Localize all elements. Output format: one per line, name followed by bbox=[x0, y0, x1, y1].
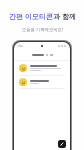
button[interactable] bbox=[14, 61, 70, 75]
staticText: 오늘을 기록해보세요! bbox=[22, 26, 63, 32]
staticText: 간편 이모티콘 bbox=[9, 12, 53, 22]
button[interactable]: 새 글 쓰기 bbox=[58, 140, 66, 148]
staticText: 과 함께 bbox=[53, 12, 76, 22]
button[interactable] bbox=[14, 76, 70, 88]
